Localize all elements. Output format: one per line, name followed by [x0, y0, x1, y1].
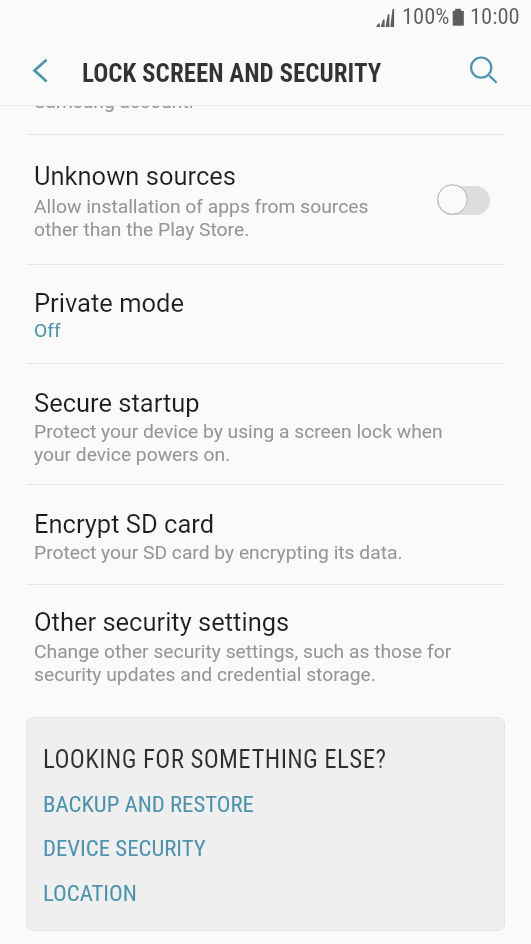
button[interactable]: Unknown sources	[0, 135, 531, 264]
staticText: Protect your device by using a screen lo…	[34, 420, 443, 466]
staticText: Other security settings	[34, 607, 290, 637]
button[interactable]: Samsung account.	[0, 60, 531, 134]
button[interactable]: Unknown sources, off	[437, 184, 490, 215]
staticText: 10:00	[470, 3, 520, 29]
staticText: Off	[34, 319, 61, 342]
button[interactable]: Navigate up	[8, 43, 62, 97]
staticText: LOCATION	[43, 880, 137, 907]
staticText: Secure startup	[34, 388, 200, 418]
staticText: BACKUP AND RESTORE	[43, 791, 254, 818]
button[interactable]: Secure startup	[0, 364, 531, 484]
staticText: 100%	[402, 3, 450, 29]
staticText: Unknown sources	[34, 161, 236, 191]
staticText: DEVICE SECURITY	[43, 835, 206, 862]
button[interactable]: Private mode	[0, 265, 531, 363]
button[interactable]: Other security settings	[0, 585, 531, 705]
staticText: Allow installation of apps from sources …	[34, 195, 369, 241]
staticText: Encrypt SD card	[34, 509, 215, 539]
staticText: Samsung account.	[34, 90, 194, 113]
staticText: LOOKING FOR SOMETHING ELSE?	[43, 745, 387, 774]
button[interactable]: DEVICE SECURITY	[26, 823, 505, 857]
staticText: LOCK SCREEN AND SECURITY	[82, 59, 382, 88]
staticText: Private mode	[34, 288, 184, 318]
button[interactable]: Encrypt SD card	[0, 485, 531, 584]
staticText: Change other security settings, such as …	[34, 640, 452, 686]
button[interactable]: Search	[455, 41, 511, 97]
button[interactable]: LOCATION	[26, 868, 505, 902]
button[interactable]: BACKUP AND RESTORE	[26, 779, 505, 813]
staticText: Protect your SD card by encrypting its d…	[34, 541, 403, 564]
